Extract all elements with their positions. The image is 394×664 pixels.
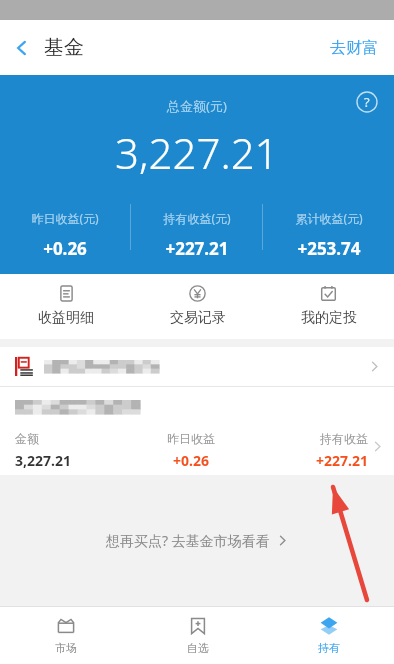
staticText: +227.21 [165, 237, 229, 260]
staticText: 去财富 [330, 38, 378, 58]
staticText: 昨日收益 [167, 431, 215, 446]
staticText: 想再买点? 去基金市场看看 [106, 531, 270, 550]
button[interactable]: 自选 [132, 607, 263, 664]
button[interactable]: 我的定投 [263, 274, 394, 339]
button[interactable]: 累计收益(元) [263, 196, 394, 260]
staticText: 金额 [15, 431, 39, 446]
button[interactable]: 想再买点? 去基金市场看看 [86, 521, 308, 560]
staticText: 昨日收益(元) [31, 210, 99, 226]
button[interactable] [0, 347, 394, 386]
staticText: 累计收益(元) [295, 210, 363, 226]
button[interactable]: 市场 [0, 607, 132, 664]
staticText: 交易记录 [170, 309, 226, 327]
button[interactable]: 持有收益(元) [131, 196, 262, 260]
button[interactable]: 交易记录 [132, 274, 263, 339]
staticText: 基金 [44, 35, 84, 60]
staticText: 自选 [187, 641, 209, 655]
staticText: 收益明细 [38, 309, 94, 327]
staticText: +227.21 [316, 451, 368, 470]
button[interactable]: Back [0, 35, 92, 60]
staticText: 持有收益(元) [163, 210, 231, 226]
staticText: +0.26 [43, 237, 87, 260]
button[interactable]: 持有 [263, 607, 394, 664]
staticText: 3,227.21 [15, 451, 71, 470]
staticText: ? [364, 93, 370, 111]
button[interactable]: 金额 [0, 387, 394, 475]
staticText: 市场 [55, 641, 77, 655]
staticText: +253.74 [297, 237, 361, 260]
staticText: 持有 [318, 641, 340, 655]
button[interactable]: 昨日收益(元) [0, 196, 130, 260]
staticText: 我的定投 [301, 309, 357, 327]
staticText: 总金额(元) [167, 97, 227, 115]
staticText: +0.26 [173, 451, 209, 470]
button[interactable]: 去财富 [314, 28, 394, 68]
staticText: 持有收益 [320, 431, 368, 446]
button[interactable]: Help [350, 85, 384, 119]
button[interactable]: 收益明细 [0, 274, 132, 339]
staticText: 3,227.21 [115, 124, 279, 181]
